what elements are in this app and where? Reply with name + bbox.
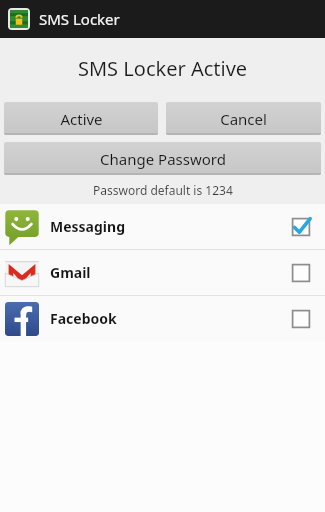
button[interactable]: Messaging [0,204,325,249]
staticText: SMS Locker [39,9,120,29]
button[interactable]: Facebook [0,296,325,341]
staticText: Active [60,109,103,129]
button[interactable]: Change Password [4,142,321,175]
staticText: Password default is 1234 [93,182,233,198]
button[interactable]: Gmail [0,250,325,295]
staticText: Facebook [50,309,117,328]
staticText: Messaging [50,217,125,236]
staticText: Cancel [220,109,267,129]
button[interactable]: Unchecked [291,263,311,283]
button[interactable]: Active [4,102,158,135]
button[interactable]: Unchecked [291,309,311,329]
button[interactable]: Cancel [166,102,321,135]
staticText: Change Password [100,149,226,169]
staticText: SMS Locker Active [78,55,248,82]
staticText: Gmail [50,263,91,282]
button[interactable]: Checked [291,217,311,237]
